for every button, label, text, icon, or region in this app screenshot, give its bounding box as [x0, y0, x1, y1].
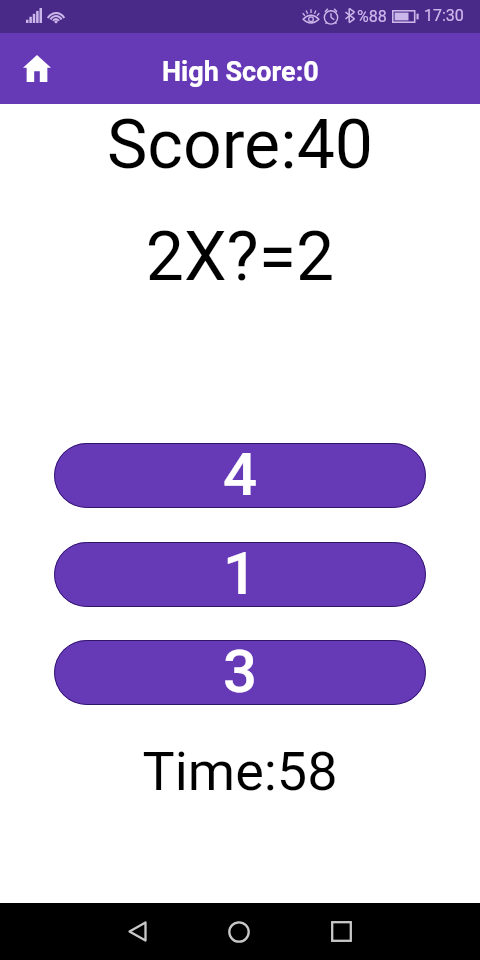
staticText: High Score:0 [162, 56, 319, 88]
staticText: %88 [357, 7, 387, 26]
staticText: 2X?=2 [0, 217, 480, 297]
staticText: 4 [223, 443, 258, 504]
button[interactable]: Home [215, 903, 263, 960]
staticText: 1 [223, 542, 258, 603]
staticText: 3 [223, 640, 258, 701]
button[interactable]: 4 [54, 443, 426, 508]
staticText: Time:58 [0, 740, 480, 803]
button[interactable]: Home [10, 41, 64, 95]
button[interactable]: Back [113, 903, 161, 960]
staticText: Score:40 [0, 105, 480, 185]
staticText: 17:30 [424, 6, 464, 25]
button[interactable]: 3 [54, 640, 426, 705]
button[interactable]: Recents [317, 903, 365, 960]
button[interactable]: 1 [54, 542, 426, 607]
